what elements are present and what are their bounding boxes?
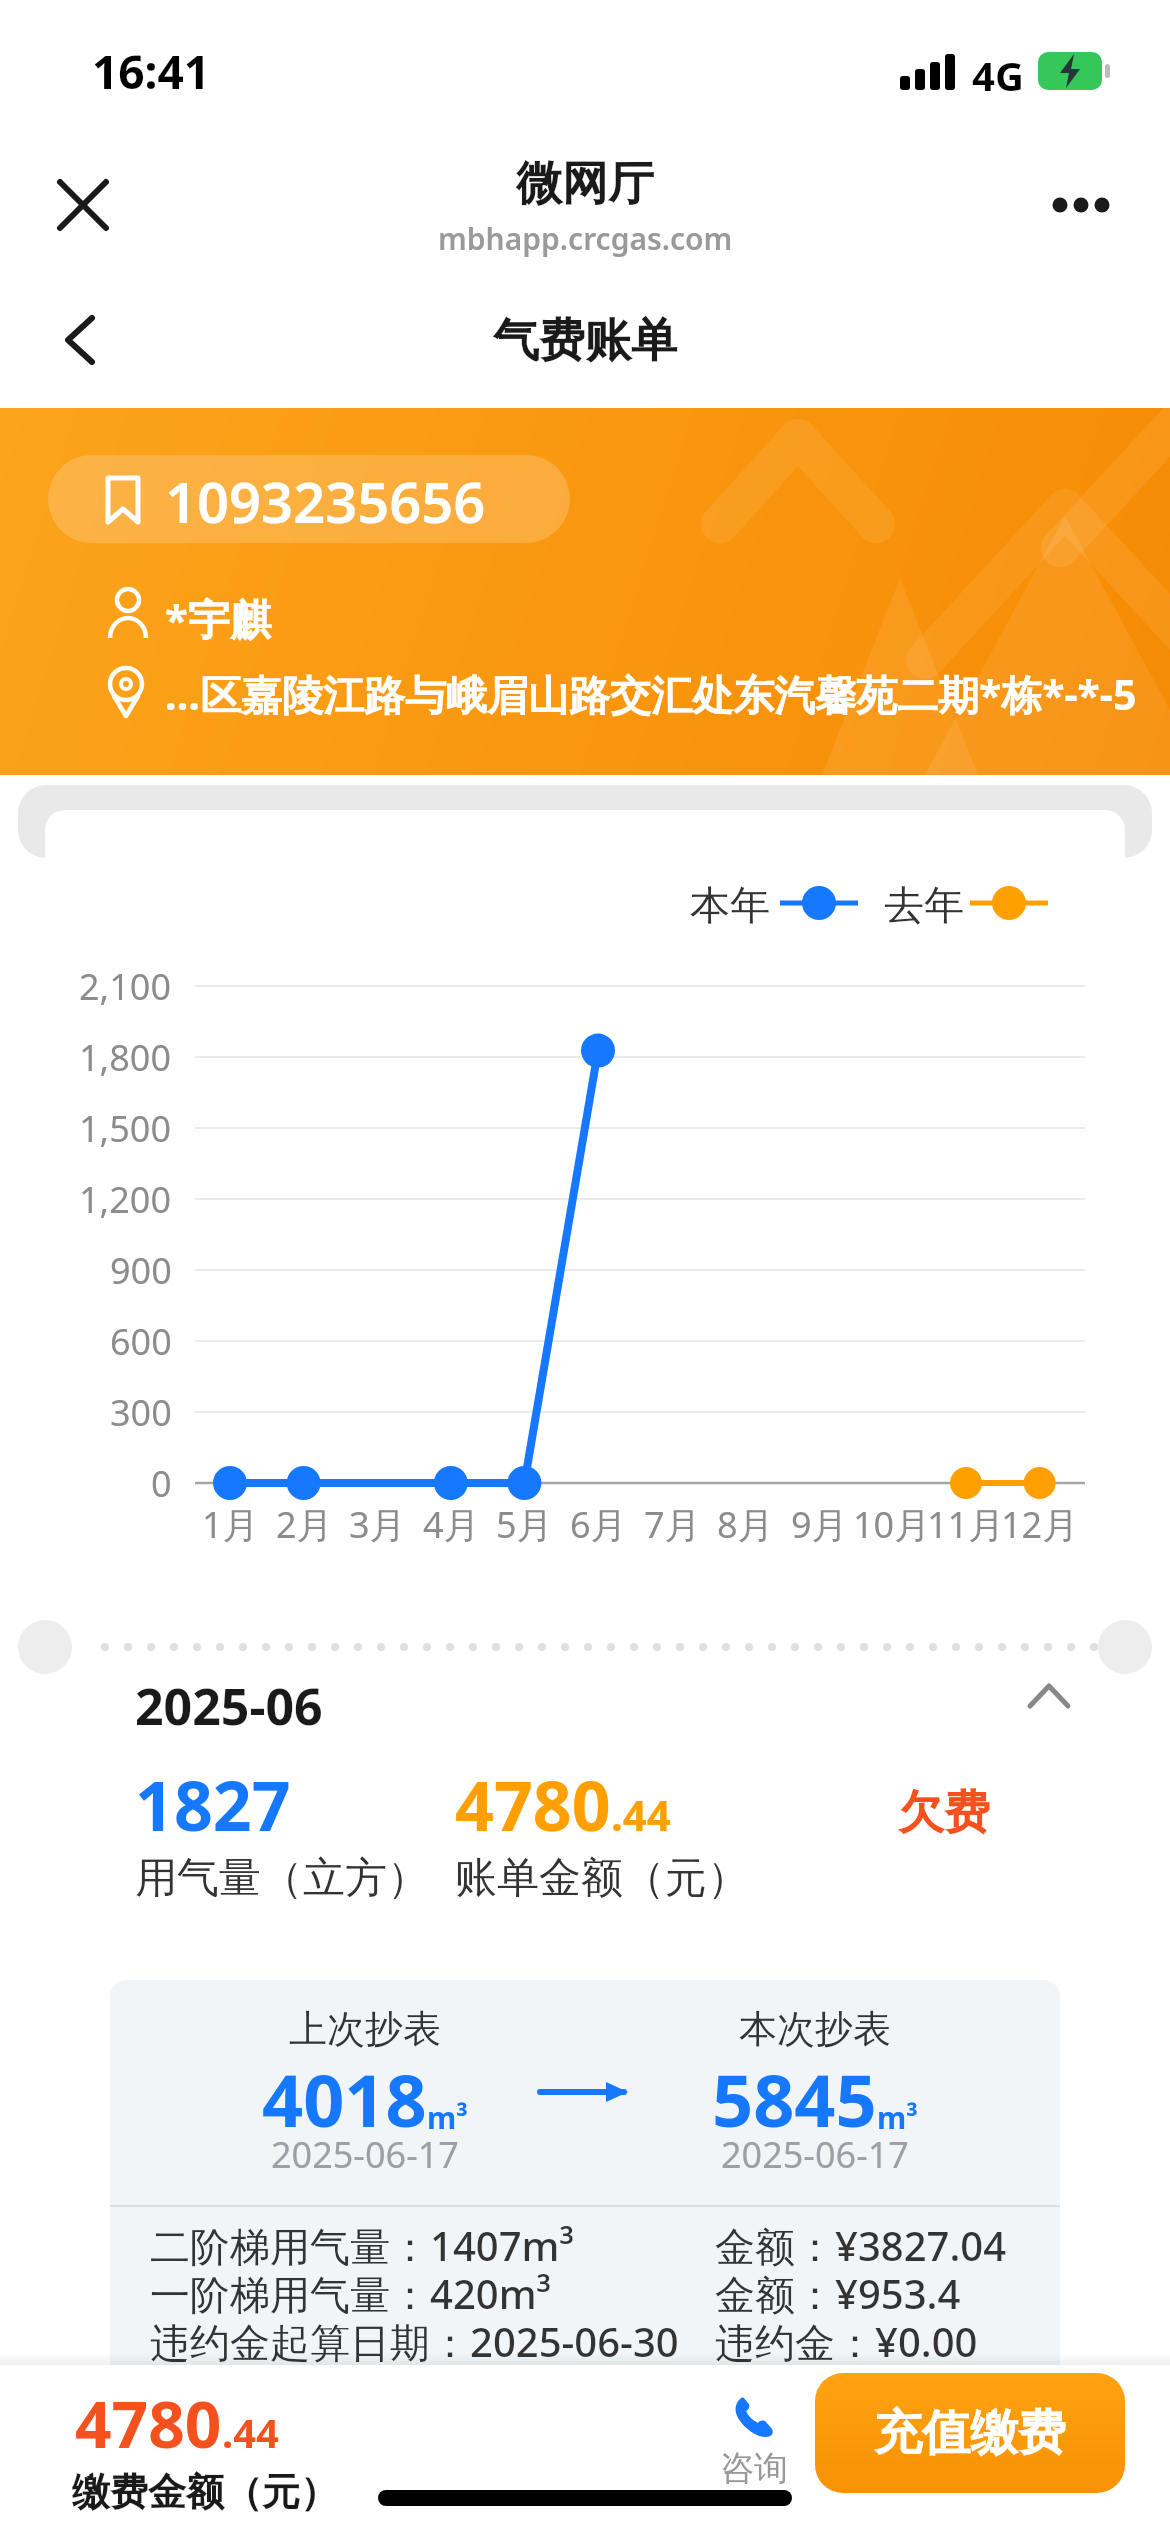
button[interactable]	[58, 180, 108, 230]
staticText: 气费账单	[493, 312, 677, 370]
staticText: 3月	[349, 1500, 406, 1549]
staticText: 4G	[972, 48, 1024, 102]
staticText: 5845	[712, 2050, 877, 2148]
staticText: 2025-06-17	[271, 2130, 459, 2179]
staticText: 0	[151, 1459, 172, 1508]
staticText: 1093235656	[165, 463, 486, 539]
staticText: 4780	[455, 1758, 611, 1851]
staticText: 9月	[791, 1500, 848, 1549]
button[interactable]	[1028, 1682, 1070, 1708]
staticText: 上次抄表	[289, 2005, 441, 2053]
button[interactable]: 咨询	[714, 2395, 794, 2490]
button[interactable]	[60, 314, 102, 366]
staticText: 8月	[717, 1500, 774, 1549]
staticText: m³	[877, 2097, 918, 2138]
staticText: mbhapp.crcgas.com	[438, 218, 733, 259]
staticText: …区嘉陵江路与峨眉山路交汇处东汽馨苑二期*栋*-*-5	[165, 666, 1137, 722]
staticText: *宇麒	[165, 590, 272, 647]
staticText: .44	[222, 2405, 279, 2459]
staticText: 咨询	[720, 2447, 788, 2490]
staticText: 16:41	[92, 40, 211, 103]
staticText: 违约金：¥0.00	[715, 2314, 978, 2369]
button[interactable]	[1050, 190, 1114, 220]
staticText: 欠费	[898, 1784, 990, 1842]
staticText: 1月	[202, 1500, 259, 1549]
staticText: 违约金起算日期：2025-06-30	[150, 2314, 679, 2369]
staticText: 账单金额（元）	[455, 1852, 749, 1905]
staticText: 2月	[276, 1500, 333, 1549]
staticText: 5月	[496, 1500, 553, 1549]
staticText: 充值缴费	[874, 2403, 1066, 2463]
staticText: 10月	[853, 1500, 931, 1549]
staticText: 7月	[644, 1500, 701, 1549]
button[interactable]: 充值缴费	[815, 2373, 1125, 2493]
staticText: 缴费金额（元）	[72, 2468, 338, 2516]
staticText: 1,500	[79, 1104, 172, 1153]
staticText: 1827	[135, 1758, 291, 1851]
staticText: 本年	[690, 880, 770, 930]
staticText: 600	[110, 1317, 172, 1366]
button[interactable]: 1093235656	[48, 455, 570, 543]
staticText: 微网厅	[516, 155, 654, 213]
staticText: 4780	[75, 2380, 222, 2467]
staticText: 1,200	[79, 1175, 172, 1224]
staticText: 去年	[884, 880, 964, 930]
staticText: 2025-06-17	[721, 2130, 909, 2179]
staticText: 二阶梯用气量：1407m³	[150, 2218, 574, 2273]
staticText: 金额：¥3827.04	[715, 2218, 1007, 2273]
staticText: 12月	[1001, 1500, 1079, 1549]
staticText: 4018	[262, 2050, 427, 2148]
staticText: .44	[611, 1786, 671, 1843]
staticText: m³	[427, 2097, 468, 2138]
staticText: 11月	[927, 1500, 1005, 1549]
staticText: 一阶梯用气量：420m³	[150, 2266, 551, 2321]
staticText: 300	[110, 1388, 172, 1437]
staticText: 6月	[570, 1500, 627, 1549]
staticText: 900	[110, 1246, 172, 1295]
staticText: 金额：¥953.4	[715, 2266, 961, 2321]
staticText: 4月	[423, 1500, 480, 1549]
staticText: 2,100	[79, 962, 172, 1011]
staticText: 1,800	[79, 1033, 172, 1082]
staticText: 本次抄表	[739, 2005, 891, 2053]
staticText: 用气量（立方）	[135, 1852, 429, 1905]
staticText: 2025-06	[135, 1672, 323, 1740]
